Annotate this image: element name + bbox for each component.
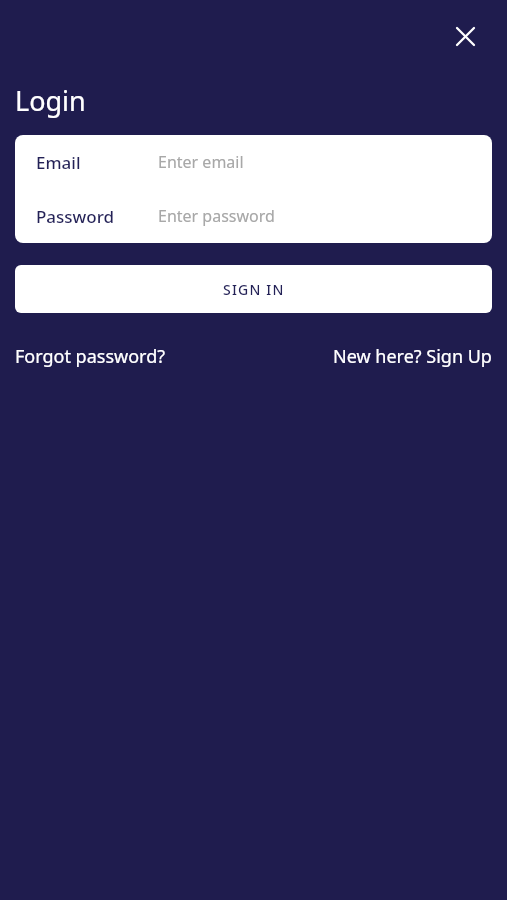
staticText: Login [15, 82, 86, 119]
staticText: Email [36, 151, 81, 174]
staticText: SIGN IN [223, 280, 285, 299]
button[interactable]: SIGN IN [15, 265, 492, 313]
staticText: Enter password [158, 205, 275, 227]
staticText: Password [36, 205, 115, 228]
staticText: Enter email [158, 151, 244, 173]
button[interactable]: New here? Sign Up [333, 344, 492, 369]
button[interactable]: Email [15, 135, 492, 189]
button[interactable] [445, 16, 485, 56]
button[interactable]: Password [15, 189, 492, 243]
staticText: New here? Sign Up [333, 344, 492, 369]
staticText: Forgot password? [15, 344, 166, 369]
button[interactable]: Forgot password? [15, 344, 166, 369]
